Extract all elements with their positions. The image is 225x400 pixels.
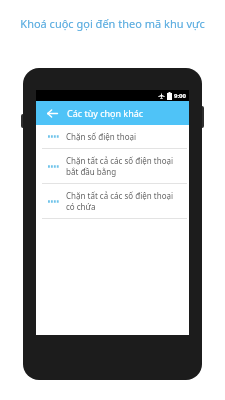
button[interactable]: Chặn số điện thoại [36, 125, 189, 148]
staticText: Chặn tất cả các số điện thoại có chứa [66, 190, 183, 212]
staticText: 9:00 [174, 92, 186, 100]
button[interactable]: Chặn tất cả các số điện thoại bắt đầu bằ… [36, 149, 189, 183]
button[interactable]: Chặn tất cả các số điện thoại có chứa [36, 184, 189, 218]
staticText: Khoá cuộc gọi đến theo mã khu vực [20, 16, 205, 31]
staticText: Các tùy chọn khác [67, 107, 144, 119]
button[interactable]: Back [44, 105, 60, 121]
staticText: Chặn số điện thoại [66, 131, 137, 142]
staticText: Chặn tất cả các số điện thoại bắt đầu bằ… [66, 155, 183, 177]
